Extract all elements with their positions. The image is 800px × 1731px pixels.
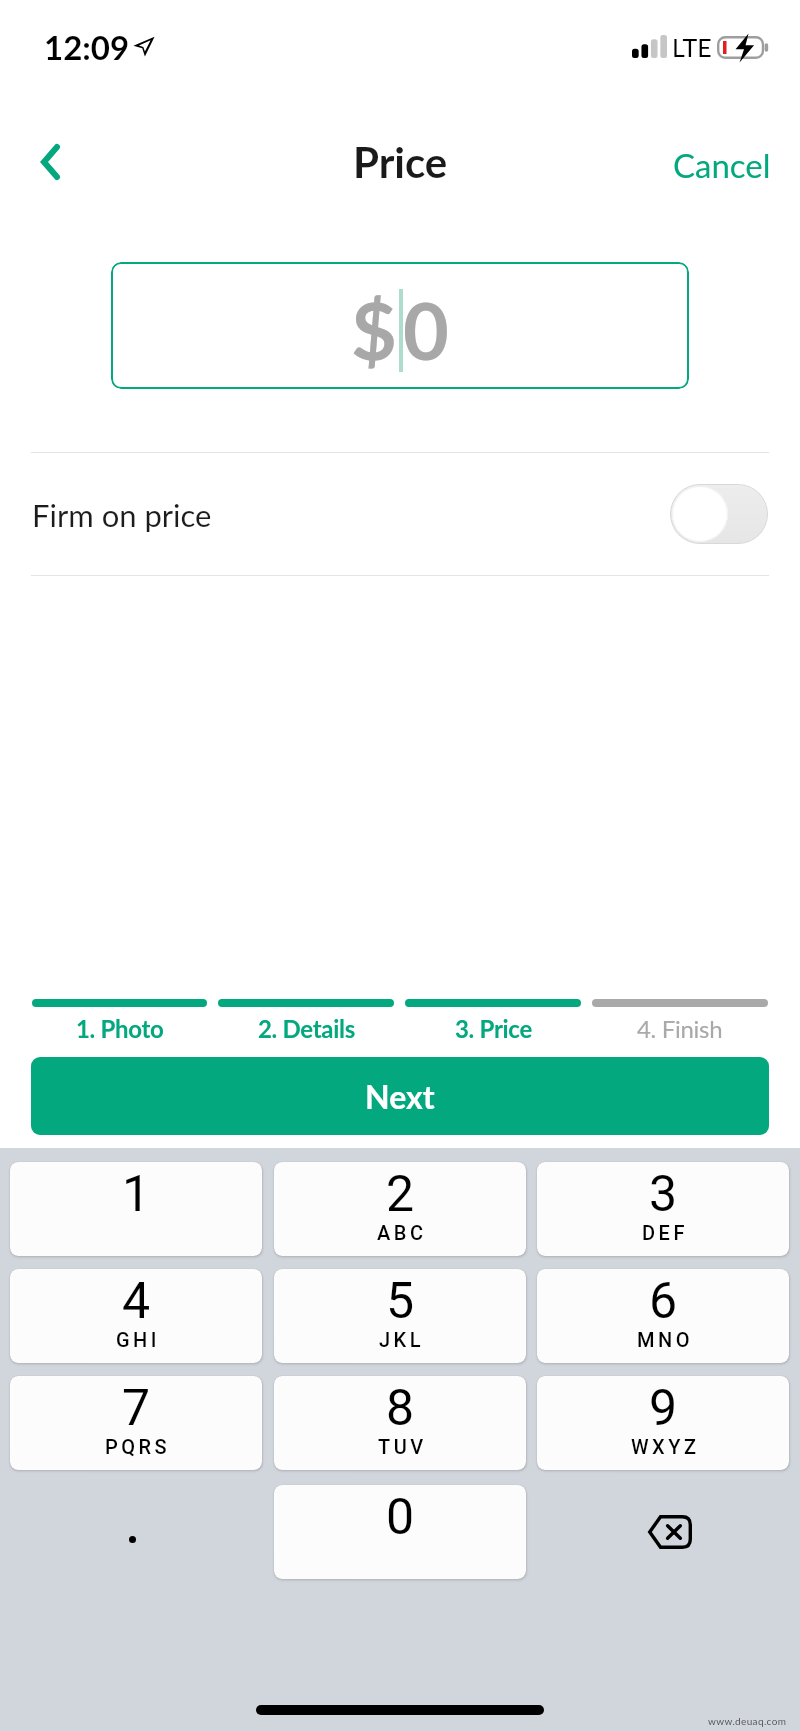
button[interactable]: Firm on price	[0, 453, 800, 575]
staticText: Price	[353, 137, 448, 187]
staticText: 1	[122, 1165, 151, 1224]
button[interactable]: 2	[274, 1162, 526, 1256]
button[interactable]: Back	[8, 118, 90, 200]
button[interactable]: 8	[274, 1376, 526, 1470]
staticText: 5	[386, 1272, 415, 1331]
staticText: 3. Price	[455, 1014, 532, 1043]
staticText: GHI	[116, 1328, 160, 1351]
staticText: 2	[386, 1165, 415, 1224]
button[interactable]: 3	[537, 1162, 789, 1256]
button[interactable]: 2. Details	[218, 999, 394, 1043]
button[interactable]: 9	[537, 1376, 789, 1470]
button[interactable]: 0	[274, 1485, 526, 1579]
button[interactable]: Next	[31, 1057, 769, 1135]
staticText: MNO	[637, 1328, 694, 1351]
staticText: 8	[386, 1379, 415, 1438]
staticText: 2. Details	[258, 1014, 355, 1043]
staticText: 4	[122, 1272, 151, 1331]
staticText: 0	[386, 1488, 415, 1547]
button[interactable]: 1. Photo	[32, 999, 207, 1043]
button[interactable]: 6	[537, 1269, 789, 1363]
staticText: Cancel	[673, 145, 771, 185]
staticText: 6	[649, 1272, 678, 1331]
staticText: Firm on price	[32, 496, 212, 533]
button[interactable]: 4	[10, 1269, 262, 1363]
staticText: $	[351, 282, 397, 377]
staticText: 12:09	[44, 27, 130, 67]
staticText: 4. Finish	[637, 1014, 723, 1043]
staticText: DEF	[642, 1221, 688, 1244]
staticText: JKL	[379, 1328, 425, 1351]
button[interactable]: $	[111, 262, 689, 389]
staticText: LTE	[672, 32, 712, 62]
button[interactable]: 3. Price	[405, 999, 581, 1043]
staticText: PQRS	[105, 1435, 171, 1458]
button[interactable]: Backspace	[537, 1485, 789, 1579]
button[interactable]: Firm on price toggle	[670, 484, 768, 544]
button[interactable]: Cancel	[647, 133, 797, 197]
staticText: Next	[365, 1077, 435, 1115]
staticText: ABC	[377, 1221, 427, 1244]
button[interactable]: Decimal point	[10, 1485, 262, 1579]
staticText: 1. Photo	[76, 1014, 164, 1043]
staticText: www.deuaq.com	[708, 1715, 787, 1727]
button[interactable]: 1	[10, 1162, 262, 1256]
staticText: 0	[403, 282, 449, 377]
button[interactable]: 7	[10, 1376, 262, 1470]
staticText: TUV	[378, 1435, 427, 1458]
button[interactable]: 5	[274, 1269, 526, 1363]
staticText: 7	[122, 1379, 151, 1438]
staticText: WXYZ	[631, 1435, 700, 1458]
staticText: 3	[649, 1165, 678, 1224]
button[interactable]: 4. Finish	[592, 999, 768, 1043]
staticText: 9	[649, 1379, 678, 1438]
